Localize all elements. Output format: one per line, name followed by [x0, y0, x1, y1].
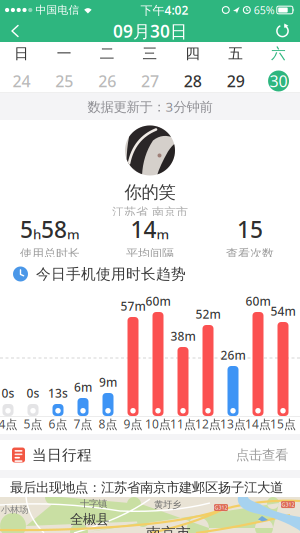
- staticText: 三: [142, 44, 157, 62]
- staticText: G312: [281, 501, 294, 508]
- staticText: m: [67, 225, 80, 243]
- staticText: 四: [185, 44, 200, 62]
- staticText: 二: [100, 44, 115, 62]
- staticText: 0s: [26, 385, 39, 401]
- staticText: 54m: [270, 303, 295, 319]
- staticText: 江苏省 南京市: [112, 205, 188, 219]
- staticText: m: [156, 225, 169, 243]
- staticText: 5点: [23, 416, 42, 432]
- staticText: 今日手机使用时长趋势: [36, 265, 186, 283]
- button[interactable]: Back: [0, 20, 20, 41]
- staticText: 12点: [195, 416, 221, 432]
- staticText: 28: [184, 70, 202, 92]
- staticText: G312: [214, 504, 227, 511]
- staticText: 最后出现地点：江苏省南京市建邺区扬子江大道: [10, 479, 283, 496]
- button[interactable]: 当日行程: [0, 440, 300, 470]
- staticText: 查看次数: [226, 246, 274, 261]
- button[interactable]: 25: [43, 70, 86, 92]
- staticText: 下午4:02: [141, 2, 189, 18]
- button[interactable]: 29: [214, 70, 257, 92]
- button[interactable]: 查看地图: [0, 497, 300, 533]
- staticText: 30: [270, 70, 288, 92]
- staticText: 15: [237, 214, 263, 244]
- staticText: 数据更新于：3分钟前: [87, 98, 212, 115]
- staticText: 11点: [170, 416, 196, 432]
- staticText: 点击查看: [236, 447, 288, 463]
- button[interactable]: 30: [257, 70, 300, 92]
- staticText: 五: [228, 44, 243, 62]
- staticText: 6点: [48, 416, 67, 432]
- staticText: 14: [130, 214, 156, 244]
- staticText: 9点: [123, 416, 142, 432]
- staticText: 全椒县: [70, 511, 109, 527]
- staticText: 日: [14, 44, 29, 62]
- staticText: 一: [57, 44, 72, 62]
- staticText: 十字镇: [80, 498, 107, 509]
- staticText: 9m: [99, 374, 117, 390]
- staticText: 六: [271, 44, 286, 62]
- staticText: 5: [20, 214, 33, 244]
- staticText: 60m: [145, 293, 170, 309]
- staticText: 南京市: [146, 524, 191, 533]
- staticText: 26: [98, 70, 116, 92]
- staticText: 中国电信: [35, 3, 79, 16]
- staticText: 52m: [195, 306, 220, 322]
- staticText: 8点: [98, 416, 117, 432]
- staticText: 平均间隔: [126, 246, 174, 261]
- staticText: 使用总时长: [20, 246, 80, 261]
- staticText: 4点: [0, 416, 17, 432]
- staticText: 15点: [270, 416, 296, 432]
- staticText: 38m: [170, 328, 195, 344]
- staticText: 65%: [254, 3, 275, 17]
- staticText: 29: [227, 70, 245, 92]
- staticText: 13s: [48, 385, 68, 401]
- button[interactable]: 26: [86, 70, 129, 92]
- staticText: 当日行程: [32, 446, 92, 464]
- button[interactable]: Refresh: [275, 20, 300, 41]
- staticText: 7点: [73, 416, 92, 432]
- button[interactable]: 27: [129, 70, 171, 92]
- staticText: 09月30日: [113, 19, 187, 42]
- staticText: 14点: [245, 416, 271, 432]
- staticText: 0s: [1, 385, 14, 401]
- staticText: 黄圩乡: [154, 499, 181, 510]
- staticText: 60m: [245, 293, 270, 309]
- staticText: 13点: [220, 416, 246, 432]
- staticText: 小林场: [1, 504, 28, 515]
- staticText: 10点: [145, 416, 171, 432]
- button[interactable]: 24: [0, 70, 43, 92]
- staticText: 24: [12, 70, 30, 92]
- staticText: 26m: [220, 347, 245, 363]
- staticText: 57m: [120, 298, 145, 314]
- staticText: h: [33, 225, 41, 243]
- staticText: 27: [141, 70, 159, 92]
- staticText: 6m: [74, 379, 92, 395]
- staticText: 25: [55, 70, 73, 92]
- staticText: 58: [41, 214, 67, 244]
- button[interactable]: 28: [171, 70, 214, 92]
- staticText: 你的笑: [124, 181, 175, 203]
